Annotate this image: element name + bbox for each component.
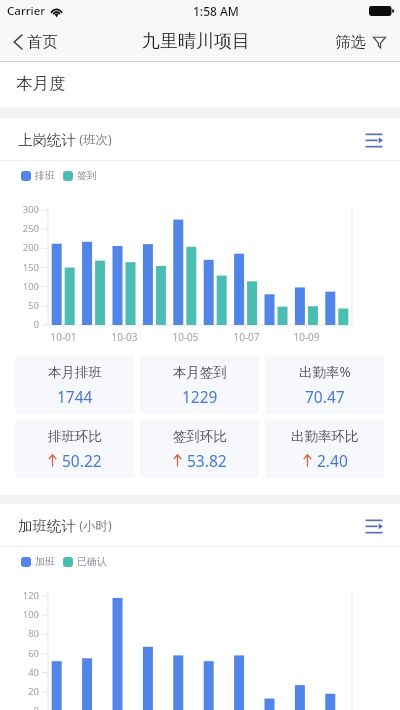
button[interactable]: 查看明细 — [361, 513, 387, 539]
staticText: 10-07 — [233, 330, 260, 344]
staticText: 签到 — [77, 169, 97, 182]
staticText: 100 — [22, 280, 39, 293]
staticText: 出勤率环比 — [291, 428, 359, 445]
staticText: 上岗统计 — [18, 131, 76, 149]
staticText: 加班统计 — [18, 517, 76, 535]
staticText: 本月度 — [16, 73, 66, 94]
staticText: 1744 — [57, 386, 93, 407]
button[interactable]: 排班环比 — [15, 420, 134, 478]
staticText: 60 — [28, 647, 39, 660]
staticText: 首页 — [27, 32, 58, 52]
staticText: 300 — [22, 203, 39, 216]
staticText: 已确认 — [77, 555, 107, 568]
staticText: 0 — [33, 704, 39, 710]
staticText: 2.40 — [317, 450, 348, 471]
staticText: 10-09 — [293, 330, 320, 344]
button[interactable]: 出勤率环比 — [265, 420, 384, 478]
staticText: 120 — [22, 589, 39, 602]
staticText: 0 — [33, 318, 39, 331]
staticText: 签到环比 — [173, 428, 227, 445]
button[interactable]: 筛选 — [333, 27, 388, 57]
staticText: 50 — [28, 299, 39, 312]
staticText: 1:58 AM — [193, 3, 239, 19]
button[interactable]: 本月排班 — [15, 356, 134, 414]
staticText: 10-03 — [111, 330, 138, 344]
staticText: 150 — [22, 261, 39, 274]
staticText: 20 — [28, 685, 39, 698]
button[interactable]: 首页 — [11, 27, 60, 57]
staticText: 200 — [22, 241, 39, 254]
staticText: 本月排班 — [48, 364, 102, 381]
button[interactable]: 签到环比 — [140, 420, 259, 478]
button[interactable]: 查看明细 — [361, 127, 387, 153]
staticText: 100 — [22, 608, 39, 621]
staticText: Carrier — [7, 3, 46, 19]
staticText: 本月签到 — [173, 364, 227, 381]
staticText: 50.22 — [62, 450, 102, 471]
staticText: 排班环比 — [48, 428, 102, 445]
staticText: 53.82 — [187, 450, 227, 471]
staticText: 40 — [28, 666, 39, 679]
staticText: 出勤率% — [299, 363, 351, 381]
staticText: 70.47 — [305, 386, 345, 407]
staticText: 筛选 — [335, 32, 366, 52]
staticText: 排班 — [35, 169, 55, 182]
button[interactable]: 出勤率% — [265, 356, 384, 414]
button[interactable]: 本月签到 — [140, 356, 259, 414]
staticText: 10-01 — [50, 330, 77, 344]
staticText: 250 — [22, 222, 39, 235]
staticText: 80 — [28, 627, 39, 640]
staticText: (小时) — [76, 517, 112, 534]
staticText: 九里晴川项目 — [142, 30, 250, 53]
staticText: 10-05 — [172, 330, 199, 344]
staticText: 加班 — [35, 555, 55, 568]
staticText: (班次) — [76, 131, 112, 148]
staticText: 1229 — [182, 386, 218, 407]
